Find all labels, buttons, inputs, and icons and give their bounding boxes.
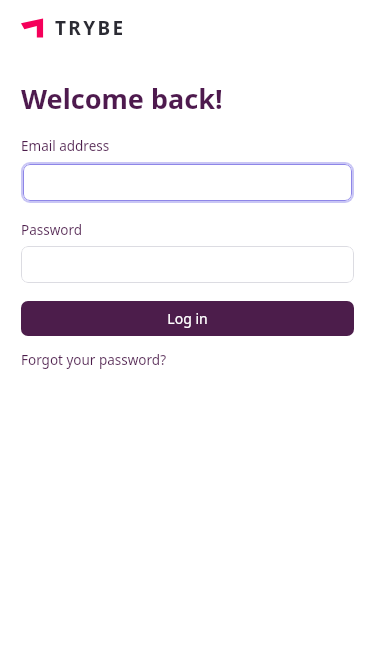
button[interactable] xyxy=(21,246,354,283)
staticText: Email address xyxy=(21,137,110,155)
staticText: TRYBE xyxy=(55,15,126,41)
button[interactable]: Trybe home xyxy=(21,13,126,43)
staticText: Forgot your password? xyxy=(21,351,167,369)
button[interactable] xyxy=(23,164,352,201)
button[interactable]: Forgot your password? xyxy=(21,349,167,371)
staticText: Password xyxy=(21,221,83,239)
button[interactable]: Log in xyxy=(21,301,354,336)
staticText: Welcome back! xyxy=(21,80,223,117)
staticText: Log in xyxy=(167,309,208,328)
